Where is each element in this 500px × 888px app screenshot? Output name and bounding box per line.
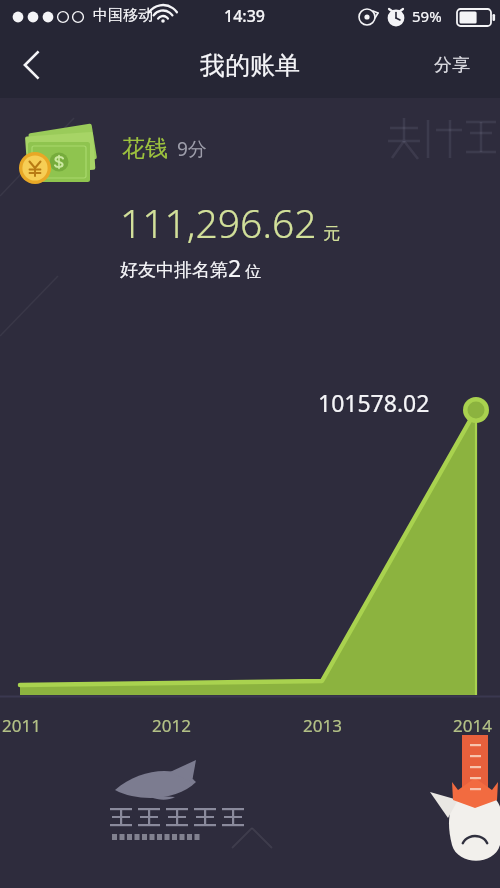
staticText: 14:39 xyxy=(224,5,265,27)
staticText: 9分 xyxy=(177,136,207,162)
button[interactable]: 返回 xyxy=(4,36,62,94)
staticText: 分享 xyxy=(434,54,470,77)
staticText: 2013 xyxy=(303,714,342,737)
staticText: 位 xyxy=(245,262,261,282)
staticText: 好友中排名第 xyxy=(120,259,228,282)
staticText: 我的账单 xyxy=(200,50,300,81)
staticText: 元 xyxy=(323,223,340,244)
button[interactable]: 我的账单 xyxy=(170,42,330,88)
staticText: 59% xyxy=(412,6,442,26)
staticText: 2014 xyxy=(453,714,492,737)
staticText: 111,296.62 xyxy=(120,196,317,249)
staticText: 101578.02 xyxy=(318,387,430,418)
staticText: 2 xyxy=(228,252,242,283)
staticText: 2012 xyxy=(152,714,191,737)
staticText: 2011 xyxy=(2,714,41,737)
staticText: 花钱 xyxy=(122,134,168,163)
button[interactable]: 分享 xyxy=(415,44,489,86)
staticText: 中国移动 xyxy=(93,6,153,25)
